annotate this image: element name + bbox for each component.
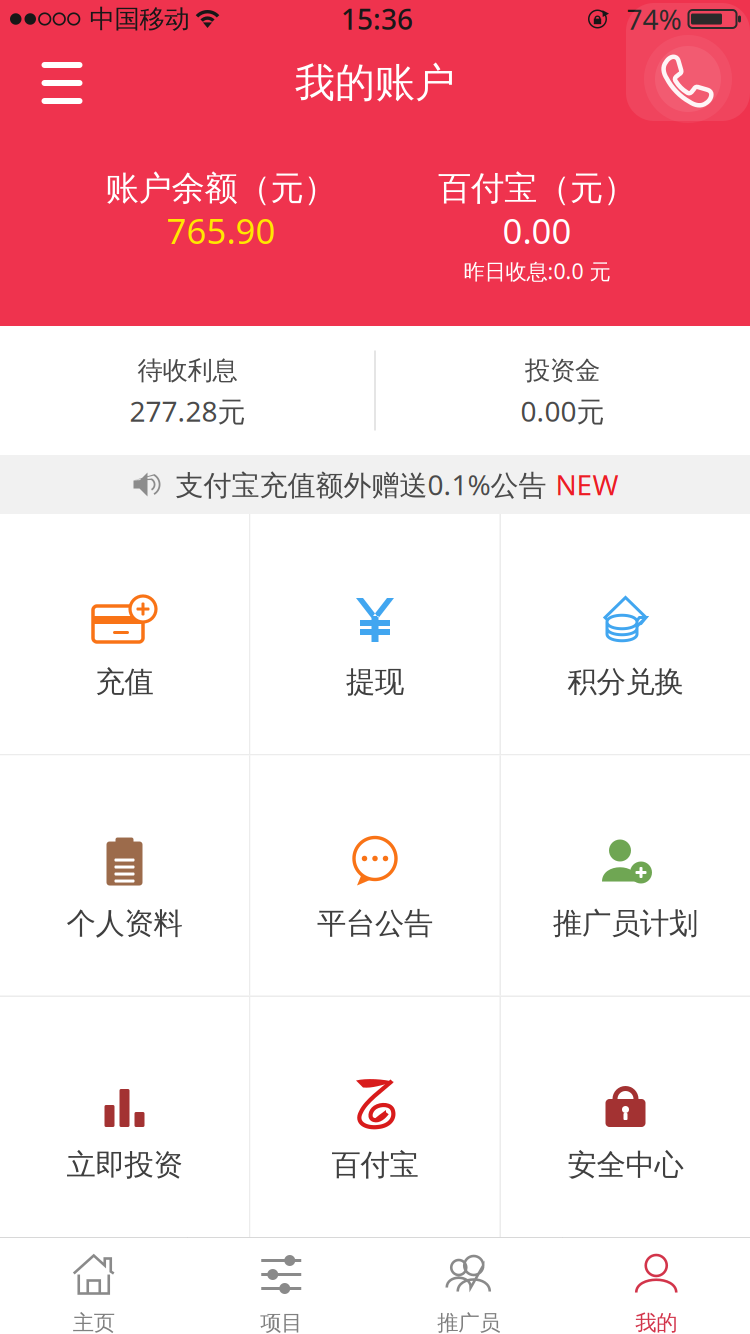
button[interactable]: 我的 xyxy=(562,1237,750,1334)
staticText: 充值 xyxy=(95,664,153,700)
staticText: 提现 xyxy=(346,664,404,700)
staticText: 立即投资 xyxy=(66,1147,182,1183)
button[interactable]: 项目 xyxy=(187,1237,375,1334)
staticText: 百付宝 xyxy=(331,1147,418,1183)
staticText: 74% xyxy=(626,0,681,38)
staticText: 百付宝（元） xyxy=(438,168,636,209)
button[interactable]: 立即投资 xyxy=(0,997,249,1237)
button[interactable]: 个人资料 xyxy=(0,755,249,995)
button[interactable]: 提现 xyxy=(250,514,499,754)
staticText: 推广员 xyxy=(437,1310,500,1334)
staticText: 我的账户 xyxy=(295,58,455,107)
staticText: 中国移动 xyxy=(89,3,189,34)
button[interactable]: Call xyxy=(626,3,750,121)
button[interactable]: 百付宝 xyxy=(250,997,499,1237)
staticText: 待收利息 xyxy=(137,355,237,386)
staticText: 账户余额（元） xyxy=(105,168,336,209)
button[interactable]: 充值 xyxy=(0,514,249,754)
button[interactable]: 支付宝充值额外赠送0.1%公告 xyxy=(0,455,750,514)
staticText: 平台公告 xyxy=(317,905,433,941)
staticText: 推广员计划 xyxy=(553,905,698,941)
staticText: 0.00 xyxy=(502,207,571,253)
staticText: 0.00元 xyxy=(520,392,604,430)
button[interactable]: 安全中心 xyxy=(501,997,750,1237)
staticText: 投资金 xyxy=(525,355,600,386)
staticText: 积分兑换 xyxy=(567,664,683,700)
staticText: 昨日收息:0.0 元 xyxy=(463,257,610,285)
button[interactable]: 积分兑换 xyxy=(501,514,750,754)
staticText: 我的 xyxy=(635,1310,677,1334)
button[interactable]: 主页 xyxy=(0,1237,187,1334)
staticText: 项目 xyxy=(260,1310,302,1334)
staticText: NEW xyxy=(555,466,618,503)
staticText: 安全中心 xyxy=(567,1147,683,1183)
staticText: 277.28元 xyxy=(129,392,245,430)
button[interactable]: 推广员计划 xyxy=(501,755,750,995)
button[interactable]: 推广员 xyxy=(375,1237,562,1334)
staticText: 支付宝充值额外赠送0.1%公告 xyxy=(175,466,546,503)
staticText: 个人资料 xyxy=(66,905,182,941)
staticText: 765.90 xyxy=(166,207,275,253)
button[interactable]: Menu xyxy=(20,39,104,127)
button[interactable]: 平台公告 xyxy=(250,755,499,995)
staticText: 15:36 xyxy=(341,0,413,38)
staticText: 主页 xyxy=(73,1310,115,1334)
